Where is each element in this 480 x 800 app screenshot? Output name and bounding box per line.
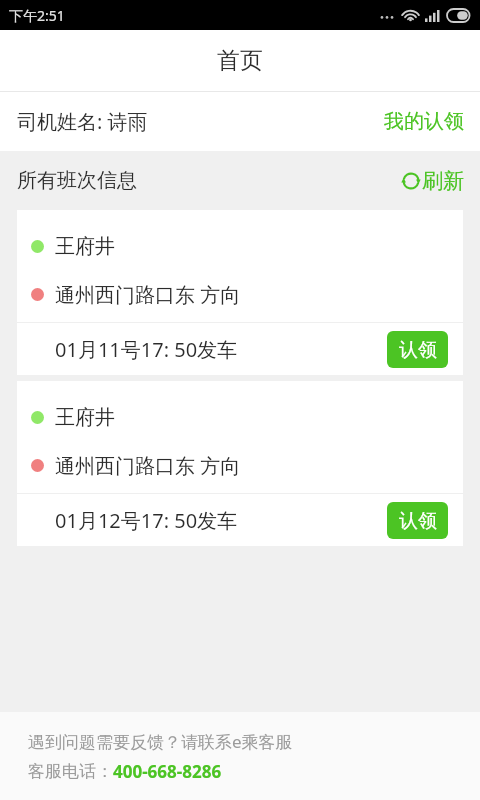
staticText: 01月12号17: 50发车 xyxy=(55,507,238,534)
staticText: 王府井 xyxy=(55,405,115,430)
staticText: 遇到问题需要反馈？请联系e乘客服 xyxy=(28,730,293,753)
button[interactable]: 认领 xyxy=(387,502,448,539)
button[interactable]: 司机姓名: 诗雨 xyxy=(0,92,480,151)
staticText: 客服电话： xyxy=(28,761,113,782)
staticText: 我的认领 xyxy=(384,109,464,134)
other: 刷新 xyxy=(401,171,421,191)
button[interactable]: 刷新 xyxy=(401,164,464,198)
staticText: 通州西门路口东 方向 xyxy=(55,452,241,479)
staticText: 首页 xyxy=(217,46,263,75)
staticText: 王府井 xyxy=(55,234,115,259)
staticText: 01月11号17: 50发车 xyxy=(55,336,238,363)
staticText: 下午2:51 xyxy=(9,6,65,25)
staticText: 司机姓名: 诗雨 xyxy=(17,108,148,135)
staticText: 刷新 xyxy=(422,168,464,194)
button[interactable]: 王府井 xyxy=(17,381,463,546)
button[interactable]: 王府井 xyxy=(17,210,463,375)
button[interactable]: 认领 xyxy=(387,331,448,368)
staticText: 所有班次信息 xyxy=(17,168,137,193)
staticText: 认领 xyxy=(399,338,437,362)
staticText: 400-668-8286 xyxy=(113,760,222,783)
staticText: 通州西门路口东 方向 xyxy=(55,281,241,308)
staticText: 认领 xyxy=(399,509,437,533)
